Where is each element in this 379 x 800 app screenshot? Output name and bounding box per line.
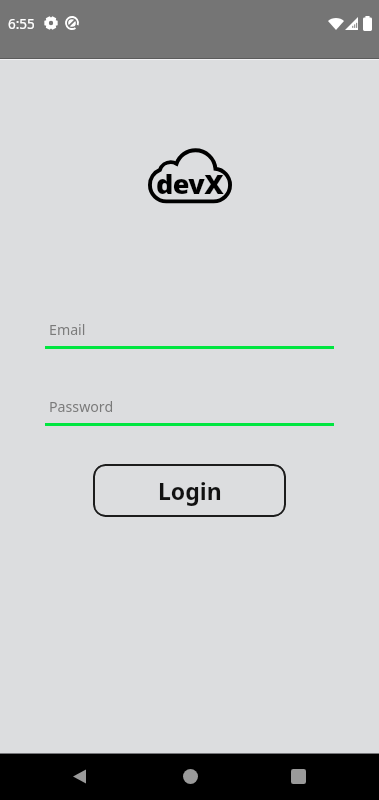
staticText: Login — [158, 475, 222, 506]
button[interactable]: Login — [93, 464, 286, 517]
button[interactable]: Home — [166, 753, 214, 800]
staticText: Password — [49, 397, 114, 416]
staticText: Email — [49, 320, 86, 339]
staticText: 6:55 — [8, 15, 35, 33]
button[interactable]: Password — [45, 395, 334, 430]
staticText: devX — [156, 165, 224, 202]
button[interactable]: Back — [55, 753, 103, 800]
button[interactable]: Recents — [274, 753, 322, 800]
button[interactable]: Email — [45, 318, 334, 353]
